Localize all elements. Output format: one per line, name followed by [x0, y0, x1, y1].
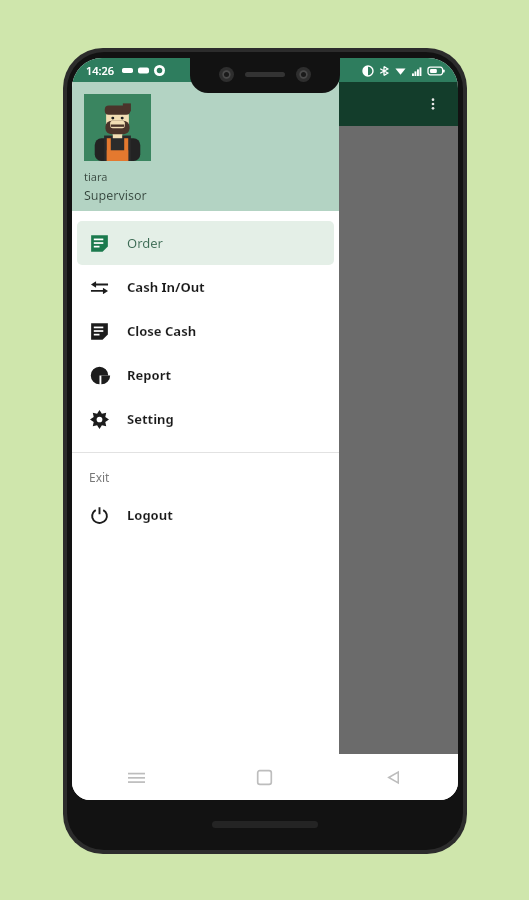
staticText: Setting [127, 410, 174, 428]
button[interactable]: Recents [72, 754, 200, 800]
button[interactable]: Order [77, 221, 334, 265]
button[interactable]: Logout [77, 493, 334, 537]
button[interactable]: Cash In/Out [77, 265, 334, 309]
staticText: Cash In/Out [127, 278, 205, 296]
staticText: Exit [89, 469, 110, 485]
button[interactable]: Report [77, 353, 334, 397]
button[interactable]: More options [422, 93, 444, 115]
staticText: Close Cash [127, 322, 197, 340]
staticText: tiara [84, 169, 108, 184]
staticText: Order [127, 234, 163, 252]
button[interactable]: Setting [77, 397, 334, 441]
staticText: Report [127, 366, 172, 384]
button[interactable]: Back [329, 754, 458, 800]
staticText: Supervisor [84, 187, 147, 204]
staticText: Logout [127, 506, 173, 524]
staticText: 14:26 [86, 63, 115, 78]
button[interactable]: Home [200, 754, 329, 800]
button[interactable]: Close Cash [77, 309, 334, 353]
